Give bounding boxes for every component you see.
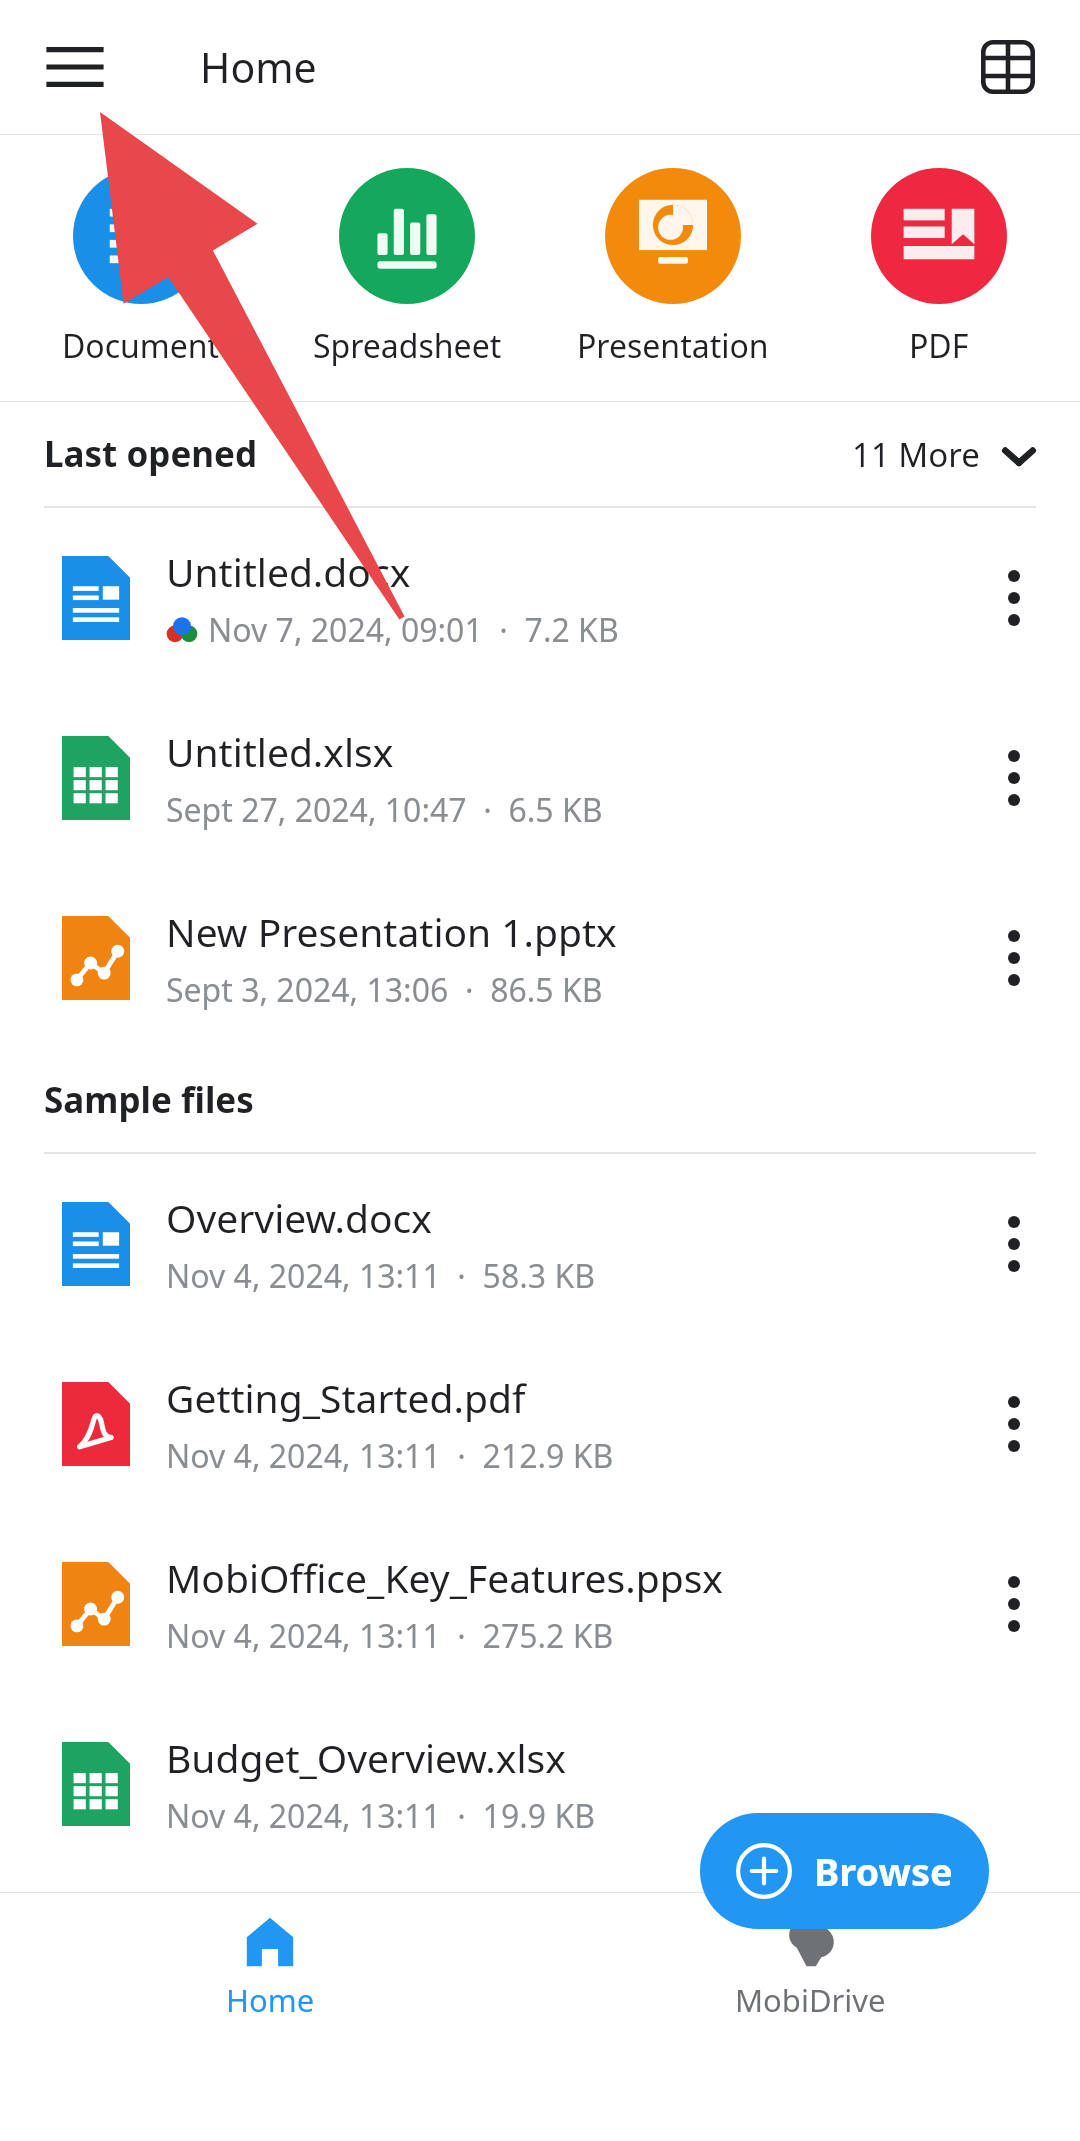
staticText: Overview.docx [166, 1191, 432, 1244]
button[interactable]: Browse [700, 1813, 989, 1929]
staticText: Home [226, 1979, 315, 2021]
staticText: Untitled.xlsx [166, 725, 394, 778]
button[interactable]: Budget_Overview.xlsx [0, 1694, 1080, 1874]
staticText: Nov 4, 2024, 13:11 · 58.3 KB [166, 1254, 595, 1298]
button[interactable]: Open navigation menu [30, 22, 120, 112]
button[interactable]: Home [0, 1907, 540, 2027]
staticText: Budget_Overview.xlsx [166, 1731, 566, 1784]
button[interactable]: Overview.docx [0, 1154, 1080, 1334]
button[interactable]: Getting_Started.pdf [0, 1334, 1080, 1514]
staticText: Sept 27, 2024, 10:47 · 6.5 KB [166, 788, 603, 832]
button[interactable]: MobiDrive [540, 1907, 1080, 2027]
button[interactable]: 11 More [844, 424, 1044, 485]
staticText: Nov 7, 2024, 09:01 · 7.2 KB [208, 608, 619, 652]
staticText: 11 More [852, 432, 980, 477]
staticText: MobiDrive [735, 1979, 886, 2021]
button[interactable]: More options for Untitled.docx [966, 550, 1062, 646]
staticText: Browse [814, 1845, 953, 1897]
staticText: Nov 4, 2024, 13:11 · 19.9 KB [166, 1794, 595, 1838]
staticText: Getting_Started.pdf [166, 1371, 526, 1424]
button[interactable]: Spreadsheet [282, 160, 532, 376]
button[interactable]: PDF [814, 160, 1064, 376]
staticText: Sample files [44, 1076, 254, 1124]
staticText: Presentation [577, 324, 769, 368]
staticText: Nov 4, 2024, 13:11 · 275.2 KB [166, 1614, 614, 1658]
staticText: Document [62, 324, 220, 368]
button[interactable]: Untitled.xlsx [0, 688, 1080, 868]
staticText: New Presentation 1.pptx [166, 905, 617, 958]
staticText: Last opened [44, 430, 258, 478]
staticText: Sept 3, 2024, 13:06 · 86.5 KB [166, 968, 603, 1012]
staticText: MobiOffice_Key_Features.ppsx [166, 1551, 723, 1604]
staticText: Untitled.docx [166, 545, 411, 598]
button[interactable]: More options for Overview.docx [966, 1196, 1062, 1292]
button[interactable]: More options for Untitled.xlsx [966, 730, 1062, 826]
staticText: Home [200, 39, 317, 95]
staticText: Nov 4, 2024, 13:11 · 212.9 KB [166, 1434, 614, 1478]
staticText: Spreadsheet [313, 324, 502, 368]
button[interactable]: Document [16, 160, 266, 376]
button[interactable]: More options for MobiOffice_Key_Features… [966, 1556, 1062, 1652]
button[interactable]: More options for Getting_Started.pdf [966, 1376, 1062, 1472]
button[interactable]: Presentation [548, 160, 798, 376]
button[interactable]: More options for New Presentation 1.pptx [966, 910, 1062, 1006]
button[interactable]: Switch view layout [960, 19, 1056, 115]
button[interactable]: MobiOffice_Key_Features.ppsx [0, 1514, 1080, 1694]
button[interactable]: New Presentation 1.pptx [0, 868, 1080, 1048]
button[interactable]: Untitled.docx [0, 508, 1080, 688]
staticText: PDF [909, 324, 969, 368]
